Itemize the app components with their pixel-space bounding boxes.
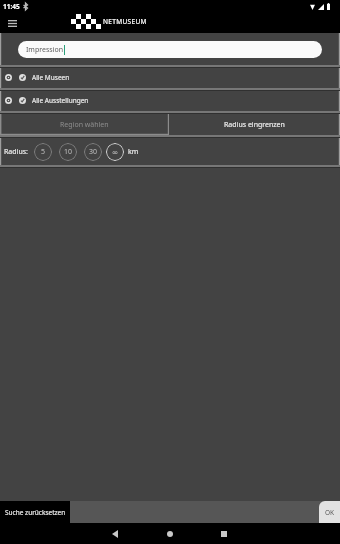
button[interactable]: Back — [101, 523, 129, 544]
button[interactable]: 5 — [34, 143, 52, 161]
staticText: km — [128, 147, 139, 157]
staticText: 10 — [64, 147, 73, 157]
staticText: 30 — [89, 147, 98, 157]
button[interactable]: NETMUSEUM — [71, 14, 147, 29]
button[interactable]: Recent apps — [210, 523, 238, 544]
staticText: NETMUSEUM — [103, 17, 147, 26]
button[interactable]: Radius eingrenzen — [169, 114, 340, 135]
staticText: Radius eingrenzen — [224, 120, 285, 130]
button[interactable]: Alle Ausstellungen — [0, 91, 340, 111]
button[interactable]: Impression — [18, 41, 322, 58]
staticText: ∞ — [112, 148, 119, 157]
staticText: Impression — [26, 45, 63, 55]
button[interactable]: OK — [319, 501, 340, 523]
button[interactable]: Open navigation menu — [0, 14, 24, 33]
button[interactable]: Alle Museen — [0, 68, 340, 88]
button[interactable]: Suche zurücksetzen — [0, 501, 70, 523]
staticText: Alle Ausstellungen — [32, 96, 89, 105]
staticText: 5 — [41, 147, 46, 157]
staticText: 11:45 — [3, 2, 20, 11]
button[interactable]: Home — [156, 523, 184, 544]
staticText: OK — [325, 508, 335, 517]
staticText: Suche zurücksetzen — [5, 508, 66, 517]
staticText: Alle Museen — [32, 73, 70, 82]
button[interactable]: 30 — [84, 143, 102, 161]
button[interactable]: 10 — [59, 143, 77, 161]
staticText: Radius: — [4, 147, 28, 157]
button[interactable]: ∞ — [106, 143, 124, 161]
button[interactable]: Region wählen — [0, 114, 169, 135]
staticText: Region wählen — [60, 120, 109, 130]
